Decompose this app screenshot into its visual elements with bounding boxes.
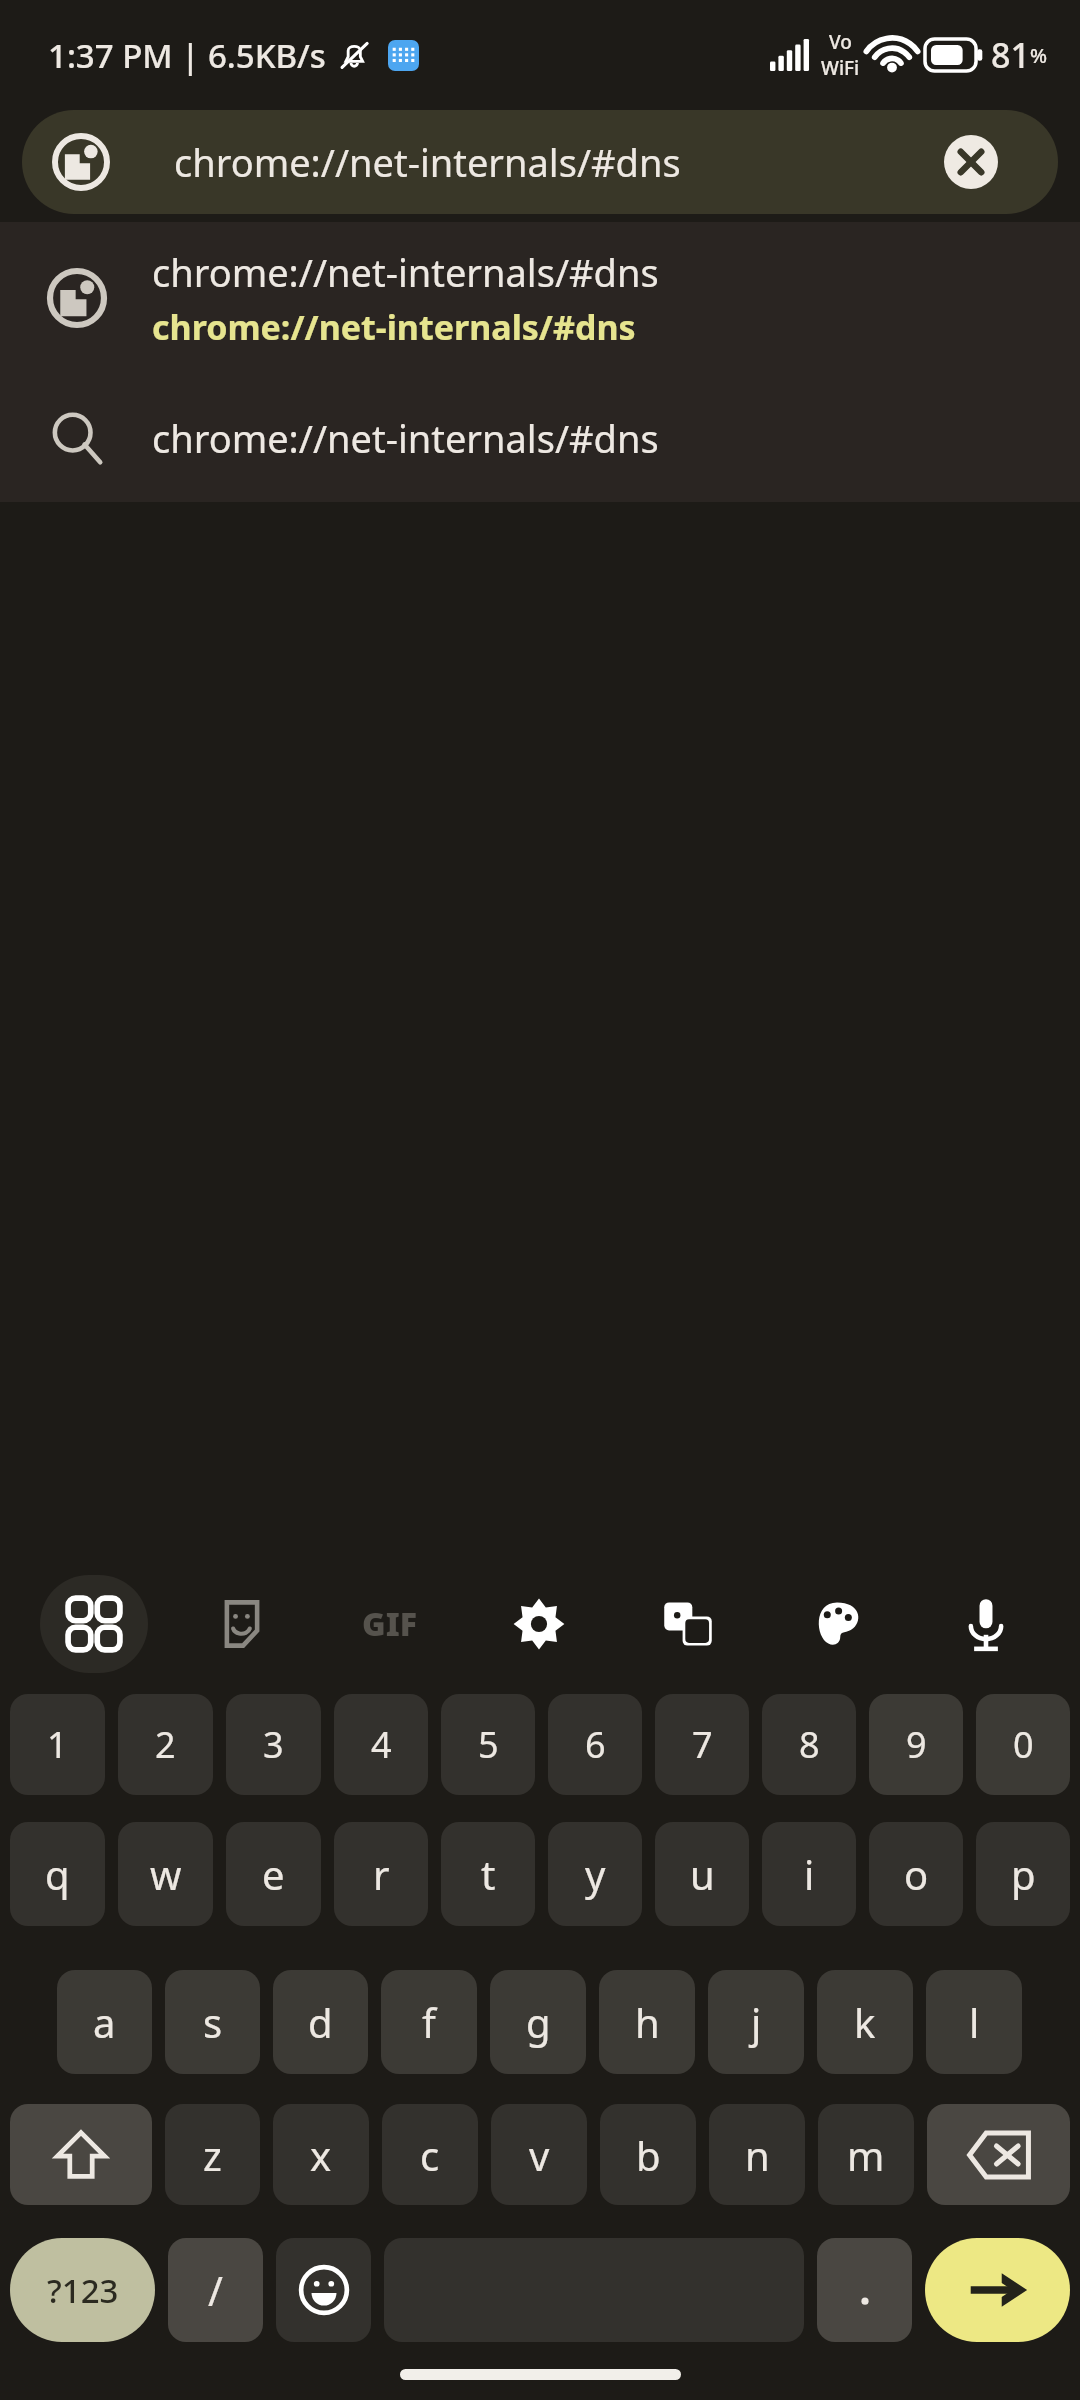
staticText: x — [310, 2128, 332, 2182]
staticText: 6 — [585, 1720, 606, 1769]
button[interactable]: Settings — [464, 1565, 613, 1683]
button[interactable]: Keyboard modes — [20, 1565, 168, 1683]
staticText: w — [150, 1847, 182, 1901]
button[interactable]: ?123 — [10, 2238, 155, 2342]
button[interactable]: d — [273, 1970, 368, 2074]
button[interactable]: Emoji — [276, 2238, 371, 2342]
button[interactable]: 0 — [976, 1694, 1070, 1795]
button[interactable]: Shift — [10, 2104, 152, 2205]
button[interactable]: j — [708, 1970, 804, 2074]
button[interactable]: Themes — [762, 1565, 911, 1683]
staticText: 8 — [799, 1720, 820, 1769]
staticText: / — [208, 2263, 223, 2317]
staticText: 4 — [371, 1720, 392, 1769]
button[interactable]: k — [817, 1970, 913, 2074]
staticText: 5 — [478, 1720, 499, 1769]
button[interactable]: h — [599, 1970, 695, 2074]
staticText: a — [93, 1995, 116, 2049]
button[interactable]: w — [118, 1822, 213, 1926]
button[interactable]: q — [10, 1822, 105, 1926]
staticText: c — [420, 2128, 440, 2182]
staticText: WiFi — [821, 55, 860, 81]
staticText: v — [529, 2128, 550, 2182]
button[interactable]: u — [655, 1822, 749, 1926]
staticText: 7 — [692, 1720, 713, 1769]
button[interactable]: p — [976, 1822, 1070, 1926]
button[interactable]: 8 — [762, 1694, 856, 1795]
staticText: 3 — [263, 1720, 284, 1769]
staticText: 2 — [155, 1720, 176, 1769]
button[interactable]: z — [165, 2104, 260, 2205]
button[interactable]: 9 — [869, 1694, 963, 1795]
button[interactable]: t — [441, 1822, 535, 1926]
other: Site information — [55, 136, 107, 188]
button[interactable]: a — [57, 1970, 152, 2074]
staticText: h — [635, 1995, 660, 2049]
button[interactable]: GIF — [316, 1565, 464, 1683]
staticText: g — [526, 1995, 551, 2049]
staticText: chrome://net-internals/#dns — [152, 304, 636, 350]
staticText: r — [373, 1847, 390, 1901]
button[interactable]: s — [165, 1970, 260, 2074]
staticText: % — [1030, 42, 1048, 69]
button[interactable]: 7 — [655, 1694, 749, 1795]
staticText: Vo — [829, 29, 852, 55]
button[interactable]: c — [382, 2104, 478, 2205]
button[interactable]: Voice input — [911, 1565, 1060, 1683]
button[interactable]: v — [491, 2104, 587, 2205]
button[interactable]: chrome://net-internals/#dns — [0, 222, 1080, 374]
button[interactable]: m — [818, 2104, 914, 2205]
button[interactable]: Site information — [22, 110, 1058, 214]
button[interactable]: 1 — [10, 1694, 105, 1795]
staticText: 1 — [47, 1720, 68, 1769]
staticText: ?123 — [47, 2268, 119, 2313]
staticText: q — [45, 1847, 70, 1901]
button[interactable]: 4 — [334, 1694, 428, 1795]
button[interactable]: Stickers — [168, 1565, 316, 1683]
button[interactable]: 3 — [226, 1694, 321, 1795]
staticText: l — [969, 1995, 980, 2049]
staticText: d — [308, 1995, 333, 2049]
button[interactable]: f — [381, 1970, 477, 2074]
staticText: s — [203, 1995, 223, 2049]
button[interactable]: g — [490, 1970, 586, 2074]
button[interactable]: Backspace — [927, 2104, 1070, 2205]
button[interactable]: 6 — [548, 1694, 642, 1795]
button[interactable]: l — [926, 1970, 1022, 2074]
staticText: i — [804, 1847, 815, 1901]
staticText: 0 — [1013, 1720, 1034, 1769]
button[interactable]: n — [709, 2104, 805, 2205]
staticText: t — [481, 1847, 496, 1901]
button[interactable]: Go — [925, 2238, 1070, 2342]
button[interactable]: r — [334, 1822, 428, 1926]
button[interactable]: 2 — [118, 1694, 213, 1795]
button[interactable]: Clear text — [944, 135, 998, 189]
button[interactable]: Translate — [613, 1565, 762, 1683]
button[interactable]: / — [168, 2238, 263, 2342]
button[interactable]: e — [226, 1822, 321, 1926]
staticText: chrome://net-internals/#dns — [152, 246, 659, 298]
button[interactable]: 5 — [441, 1694, 535, 1795]
staticText: b — [636, 2128, 661, 2182]
staticText: y — [585, 1847, 606, 1901]
staticText: e — [262, 1847, 285, 1901]
button[interactable]: y — [548, 1822, 642, 1926]
staticText: chrome://net-internals/#dns — [174, 136, 681, 188]
staticText: m — [847, 2128, 885, 2182]
button[interactable]: chrome://net-internals/#dns — [0, 374, 1080, 502]
button[interactable]: i — [762, 1822, 856, 1926]
staticText: z — [203, 2128, 222, 2182]
staticText: p — [1011, 1847, 1036, 1901]
staticText: 1:37 PM | 6.5KB/s — [48, 33, 326, 78]
button[interactable]: x — [273, 2104, 369, 2205]
button[interactable] — [817, 2238, 912, 2342]
button[interactable]: o — [869, 1822, 963, 1926]
staticText: u — [690, 1847, 715, 1901]
staticText: 81 — [991, 32, 1030, 78]
staticText: n — [745, 2128, 770, 2182]
staticText: f — [422, 1995, 436, 2049]
button[interactable]: b — [600, 2104, 696, 2205]
staticText: j — [751, 1995, 762, 2049]
staticText: chrome://net-internals/#dns — [152, 412, 659, 464]
